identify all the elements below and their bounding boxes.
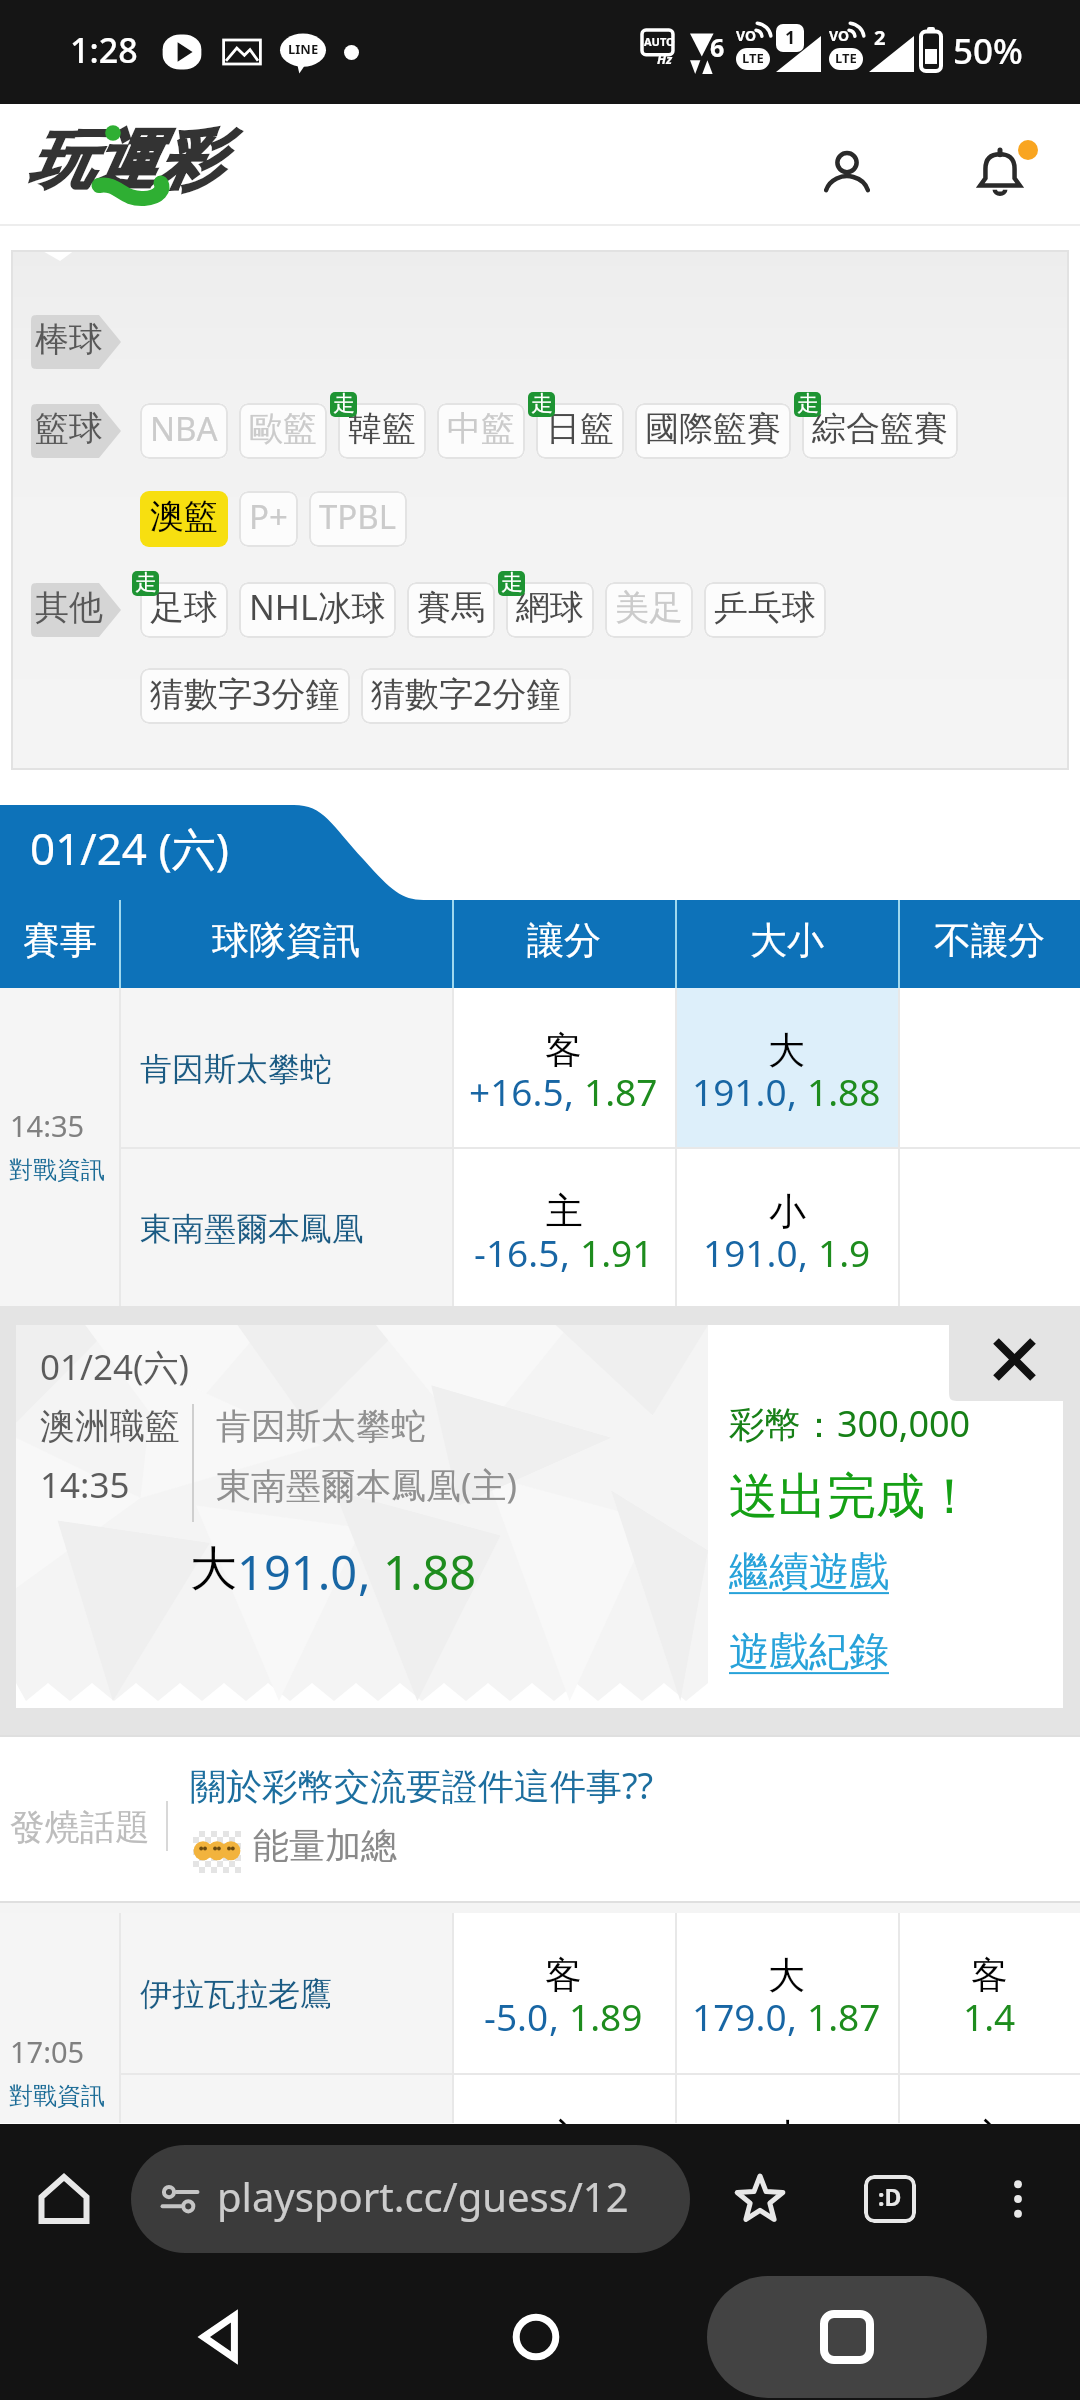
button[interactable]: playsport.cc/guess/12 [131,2145,690,2253]
staticText: 能量加總 [253,1823,397,1868]
button[interactable]: 大 [675,988,898,1147]
staticText: 美足 [615,586,683,629]
button[interactable]: Back [140,2277,300,2397]
staticText: 191.0 [237,1540,358,1604]
button[interactable]: 關於彩幣交流要證件這件事?? [190,1761,654,1810]
button[interactable]: NHL冰球 [239,582,396,638]
staticText: NHL冰球 [249,584,386,630]
staticText: 1.91 [580,1227,654,1277]
staticText: 1:28 [70,27,138,73]
button[interactable]: 繼續遊戲 [729,1546,889,1596]
staticText: 走 [333,392,355,415]
button[interactable]: 主 [452,1149,675,1306]
staticText: 中籃 [447,407,515,450]
button[interactable]: 猜數字3分鐘 [140,668,350,724]
button[interactable]: 小 [675,2075,898,2123]
staticText: 棒球 [35,318,103,361]
button[interactable]: 遊戲紀錄 [729,1626,889,1676]
staticText: , [560,1227,580,1277]
staticText: 籃球 [35,407,103,450]
staticText: 走 [531,392,553,415]
button[interactable]: 足球 [140,582,228,638]
staticText: 彩幣：300,000 [729,1399,971,1448]
button[interactable]: Tabs [848,2157,932,2241]
staticText: 客 [545,1952,582,1999]
staticText: 客 [545,1027,582,1074]
button[interactable]: 主 [452,2075,675,2123]
staticText: 韓籃 [348,407,416,450]
button[interactable]: Home [456,2277,616,2397]
button[interactable]: 綜合籃賽 [802,403,958,459]
staticText: VO [829,26,850,45]
staticText: 走 [797,392,819,415]
staticText: 主 [546,1188,583,1235]
button[interactable]: 棒球 [31,315,121,369]
staticText: 肯因斯太攀蛇 [140,1049,332,1089]
button[interactable]: 中籃 [437,403,525,459]
staticText: -5.0 [484,1991,549,2041]
button[interactable]: 小 [675,1149,898,1306]
button[interactable]: More options [978,2159,1058,2239]
button[interactable]: 國際籃賽 [635,403,791,459]
staticText: 01/24(六) [40,1343,190,1391]
button[interactable]: 大 [675,1913,898,2073]
button[interactable]: 籃球 [31,404,121,458]
staticText: -16.5 [474,1227,560,1277]
staticText: 繼續遊戲 [729,1546,889,1596]
staticText: 乒乓球 [714,586,816,629]
button[interactable]: 主 [898,2075,1080,2123]
staticText: 2 [874,24,886,51]
button[interactable]: 客 [452,988,675,1147]
button[interactable]: 14:35 [0,988,119,1306]
button[interactable]: 伊拉瓦拉老鷹 [119,1913,452,2073]
button[interactable]: 客 [898,1913,1080,2073]
button[interactable]: Account [801,127,893,219]
staticText: , [549,1991,569,2041]
button[interactable]: 乒乓球 [704,582,826,638]
staticText: 191.0 [703,1227,798,1277]
button[interactable]: NBA [140,403,228,459]
button[interactable]: 日籃 [536,403,624,459]
staticText: 對戰資訊 [9,2081,105,2111]
staticText: 東南墨爾本鳳凰 [140,1209,364,1249]
staticText: 關於彩幣交流要證件這件事?? [190,1761,654,1810]
button[interactable]: 東南墨爾本鳳凰 [119,1149,452,1306]
button[interactable]: 韓籃 [338,403,426,459]
button[interactable]: 澳籃 [140,491,228,547]
button[interactable]: 17:05 [0,1913,119,2123]
staticText: 1.89 [569,1991,643,2041]
staticText: 肯因斯太攀蛇 [216,1404,426,1448]
staticText: 球隊資訊 [212,917,360,964]
button[interactable]: Close [949,1306,1080,1413]
button[interactable]: 其他 [31,583,121,637]
staticText: 主 [971,2114,1008,2161]
button[interactable]: Bookmark [718,2157,802,2241]
button[interactable]: 猜數字2分鐘 [361,668,571,724]
staticText: 1.9 [818,1227,871,1277]
button[interactable]: Notifications [954,127,1046,219]
button[interactable]: 歐籃 [239,403,327,459]
staticText: 送出完成！ [729,1466,974,1528]
staticText: 小 [769,1188,806,1235]
button[interactable]: 賽馬 [407,582,495,638]
staticText: 6 [710,30,725,64]
button[interactable]: TPBL [309,491,407,547]
staticText: NBA [150,406,218,451]
staticText: 遊戲紀錄 [729,1626,889,1676]
button[interactable]: 網球 [506,582,594,638]
button[interactable]: 客 [452,1913,675,2073]
staticText: 1.4 [963,1991,1016,2041]
button[interactable]: 肯因斯太攀蛇 [119,988,452,1147]
button[interactable]: Recents [707,2276,987,2398]
staticText: 客 [971,1952,1008,1999]
staticText: 玩運彩 [28,120,220,201]
button[interactable]: 美足 [605,582,693,638]
button[interactable]: Home [24,2159,104,2239]
button[interactable]: P+ [239,491,298,547]
